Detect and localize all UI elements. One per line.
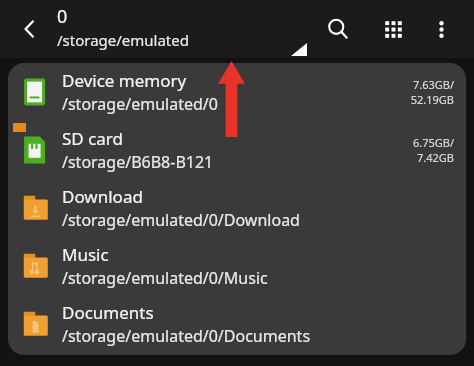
staticText: Documents	[62, 301, 154, 324]
button[interactable]: 0	[57, 4, 189, 50]
staticText: 52.19GB	[410, 92, 454, 107]
staticText: /storage/B6B8-B121	[62, 151, 214, 173]
staticText: Device memory	[62, 69, 187, 92]
staticText: SD card	[62, 127, 123, 150]
button[interactable]: Grid view	[373, 9, 413, 49]
staticText: 0	[57, 4, 68, 29]
button[interactable]: Music	[8, 237, 466, 295]
button[interactable]: Back	[10, 9, 50, 49]
staticText: Download	[62, 185, 143, 208]
staticText: /storage/emulated/0/Documents	[62, 325, 311, 347]
staticText: Music	[62, 243, 109, 266]
button[interactable]: Documents	[8, 295, 466, 353]
button[interactable]: SD card	[8, 121, 466, 179]
staticText: 7.42GB	[417, 150, 454, 165]
staticText: /storage/emulated	[57, 30, 189, 50]
button[interactable]: Device memory	[8, 63, 466, 121]
staticText: 7.63GB/	[412, 77, 454, 92]
staticText: /storage/emulated/0/Music	[62, 267, 268, 289]
button[interactable]: Search	[318, 9, 358, 49]
button[interactable]: More options	[421, 9, 461, 49]
staticText: /storage/emulated/0/Download	[62, 209, 300, 231]
staticText: /storage/emulated/0	[62, 93, 218, 115]
button[interactable]: Download	[8, 179, 466, 237]
staticText: 6.75GB/	[412, 135, 454, 150]
